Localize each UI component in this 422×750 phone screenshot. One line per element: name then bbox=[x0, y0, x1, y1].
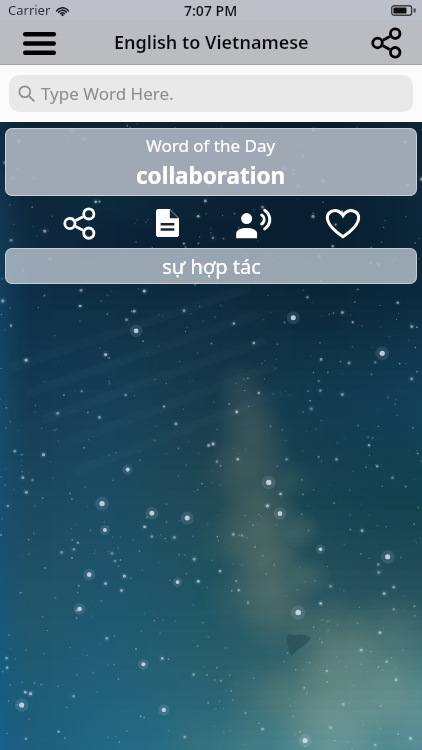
staticText: Type Word Here. bbox=[41, 82, 174, 105]
staticText: English to Vietnamese bbox=[114, 30, 309, 55]
button[interactable]: Favorite bbox=[321, 201, 365, 245]
staticText: Carrier bbox=[8, 1, 51, 19]
button[interactable]: Share bbox=[361, 20, 411, 65]
button[interactable]: sự hợp tác bbox=[5, 248, 417, 284]
staticText: sự hợp tác bbox=[162, 253, 261, 280]
staticText: 7:07 PM bbox=[184, 1, 238, 20]
staticText: collaboration bbox=[136, 160, 286, 191]
button[interactable]: Type Word Here. bbox=[9, 75, 413, 112]
button[interactable]: Menu bbox=[10, 21, 68, 65]
button[interactable]: Word of the Day bbox=[5, 128, 417, 196]
staticText: Word of the Day bbox=[146, 134, 276, 157]
button[interactable]: Pronounce bbox=[233, 201, 277, 245]
button[interactable]: Share word bbox=[57, 201, 101, 245]
button[interactable]: Definition bbox=[145, 201, 189, 245]
